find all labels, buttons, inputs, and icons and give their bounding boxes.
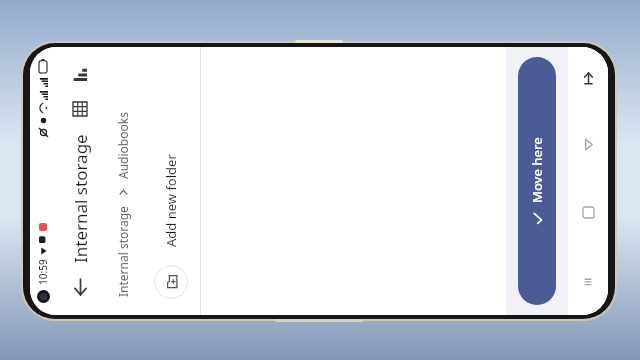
staticText: 10:59 [36, 259, 50, 285]
button[interactable]: Recents [568, 247, 608, 315]
button[interactable]: Internal storage [115, 206, 131, 297]
button[interactable]: Back [63, 271, 97, 305]
button[interactable]: Home [568, 179, 608, 247]
button[interactable]: Grid view [63, 92, 97, 126]
staticText: Move here [528, 137, 546, 203]
button[interactable]: Sort [63, 57, 97, 91]
button[interactable]: Back [568, 111, 608, 179]
staticText: Internal storage [69, 134, 92, 263]
staticText: Add new folder [162, 154, 180, 247]
button[interactable]: Audiobooks [115, 112, 131, 179]
button[interactable]: Add new folder [142, 47, 200, 315]
button[interactable]: Move here [518, 57, 556, 305]
button[interactable]: Hide keyboard [568, 47, 608, 111]
